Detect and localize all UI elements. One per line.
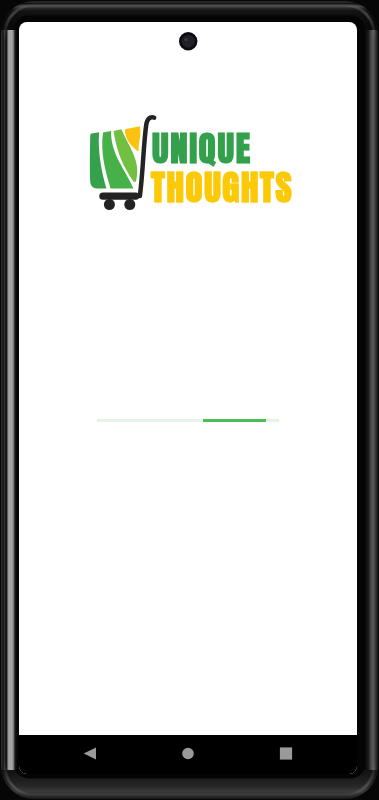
staticText: UNIQUE — [152, 122, 252, 175]
button[interactable]: Recents — [263, 734, 309, 773]
button[interactable]: Home — [165, 734, 211, 773]
staticText: THOUGHTS — [151, 161, 294, 214]
button[interactable]: Back — [67, 734, 113, 773]
